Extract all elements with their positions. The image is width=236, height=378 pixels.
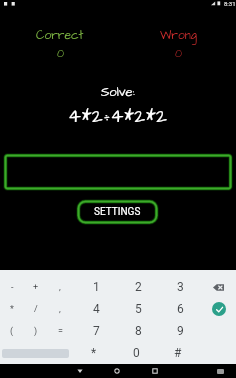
button[interactable]: * bbox=[73, 342, 115, 364]
button[interactable]: * bbox=[0, 298, 24, 320]
staticText: 0 bbox=[133, 346, 140, 360]
staticText: - bbox=[11, 282, 14, 293]
button[interactable]: 3 bbox=[159, 276, 201, 298]
button[interactable]: 1 bbox=[75, 276, 117, 298]
other: Backspace bbox=[213, 282, 224, 293]
button[interactable]: Recents bbox=[137, 364, 173, 378]
button[interactable] bbox=[4, 154, 232, 190]
staticText: 4*2÷4*2*2 bbox=[68, 103, 168, 129]
button[interactable]: 5 bbox=[117, 298, 159, 320]
staticText: Wrong bbox=[160, 27, 197, 44]
staticText: SETTINGS bbox=[94, 206, 141, 218]
staticText: 9 bbox=[177, 324, 184, 338]
staticText: 3 bbox=[177, 280, 184, 294]
button[interactable]: Enter bbox=[201, 298, 236, 320]
button[interactable]: ( bbox=[0, 320, 24, 342]
button[interactable]: , bbox=[48, 298, 72, 320]
button[interactable]: ) bbox=[24, 320, 48, 342]
button[interactable]: 9 bbox=[159, 320, 201, 342]
button[interactable]: Backspace bbox=[201, 276, 236, 298]
button[interactable]: 6 bbox=[159, 298, 201, 320]
button[interactable]: - bbox=[0, 276, 24, 298]
button[interactable]: 0 bbox=[115, 342, 157, 364]
button[interactable]: = bbox=[48, 320, 72, 342]
staticText: * bbox=[10, 304, 14, 315]
staticText: = bbox=[58, 326, 63, 337]
staticText: 1 bbox=[93, 280, 100, 294]
button[interactable]: 8 bbox=[117, 320, 159, 342]
button[interactable]: , bbox=[48, 276, 72, 298]
button[interactable]: 2 bbox=[117, 276, 159, 298]
staticText: 4 bbox=[93, 302, 100, 316]
staticText: # bbox=[174, 346, 182, 360]
staticText: ( bbox=[10, 326, 14, 337]
staticText: 7 bbox=[93, 324, 100, 338]
staticText: / bbox=[34, 304, 38, 315]
button[interactable]: 4 bbox=[75, 298, 117, 320]
staticText: 6 bbox=[177, 302, 184, 316]
staticText: 0 bbox=[175, 46, 182, 61]
staticText: 2 bbox=[135, 280, 142, 294]
button[interactable]: 7 bbox=[75, 320, 117, 342]
button[interactable]: Back bbox=[62, 364, 98, 378]
staticText: Solve: bbox=[101, 83, 135, 101]
staticText: * bbox=[91, 346, 97, 360]
button[interactable]: # bbox=[157, 342, 199, 364]
staticText: Correct bbox=[36, 27, 84, 44]
staticText: ) bbox=[34, 326, 38, 337]
staticText: + bbox=[33, 282, 39, 293]
staticText: 8:31 bbox=[224, 0, 236, 7]
button[interactable]: SETTINGS bbox=[77, 200, 158, 224]
staticText: 0 bbox=[57, 46, 64, 61]
button[interactable]: + bbox=[24, 276, 48, 298]
other: Enter bbox=[212, 302, 226, 316]
staticText: , bbox=[59, 282, 61, 293]
button[interactable]: / bbox=[24, 298, 48, 320]
button[interactable] bbox=[0, 342, 73, 364]
staticText: 8 bbox=[135, 324, 142, 338]
staticText: 5 bbox=[135, 302, 142, 316]
button[interactable]: Hide keyboard bbox=[213, 364, 227, 378]
button[interactable]: Home bbox=[99, 364, 135, 378]
staticText: , bbox=[59, 304, 61, 315]
